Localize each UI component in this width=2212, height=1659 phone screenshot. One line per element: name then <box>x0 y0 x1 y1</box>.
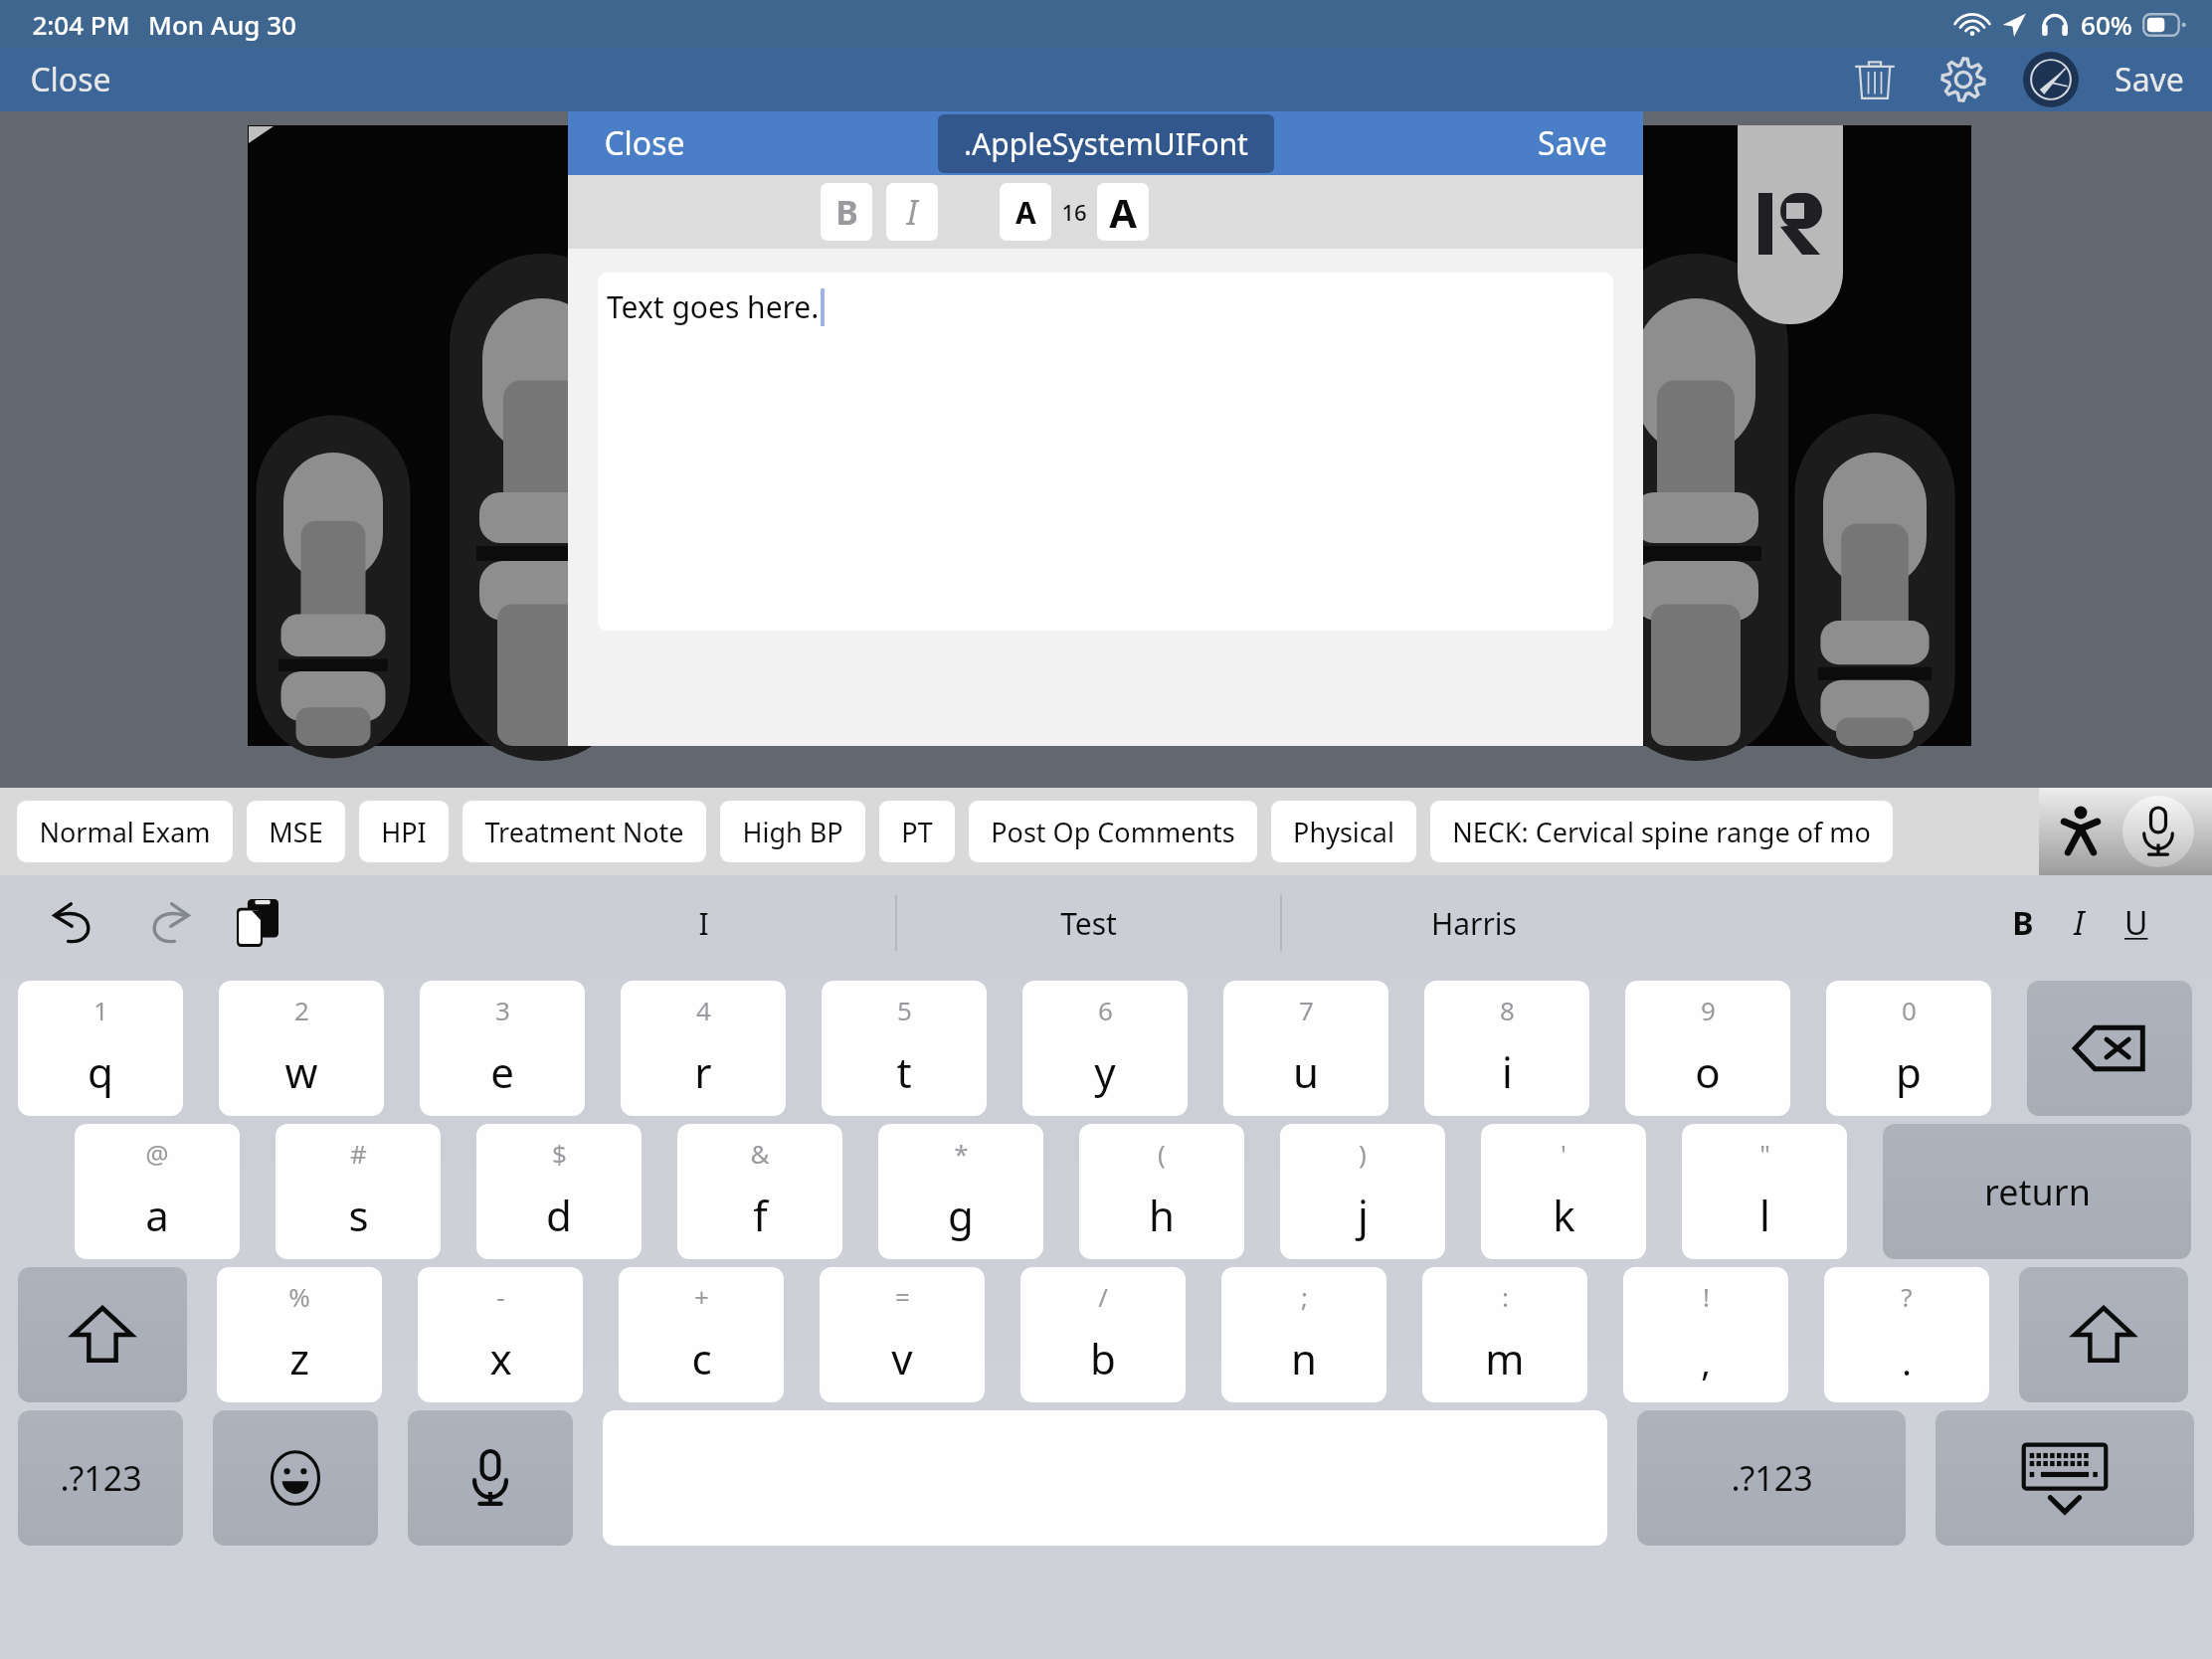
button[interactable]: Delete <box>1844 48 1906 111</box>
button[interactable]: 4 <box>621 981 786 1116</box>
button[interactable]: + <box>619 1267 784 1402</box>
button[interactable]: Shift <box>18 1267 187 1402</box>
staticText: 5 <box>897 993 912 1027</box>
button[interactable]: ) <box>1280 1124 1445 1259</box>
staticText: s <box>348 1187 369 1243</box>
button[interactable]: Harris <box>1282 875 1665 971</box>
button[interactable]: & <box>677 1124 842 1259</box>
button[interactable]: ' <box>1481 1124 1646 1259</box>
button[interactable]: Settings <box>1930 48 1997 111</box>
button[interactable]: B <box>821 183 872 241</box>
button[interactable]: Save <box>2105 52 2194 107</box>
staticText: ) <box>1359 1136 1367 1171</box>
button[interactable]: Test <box>897 875 1280 971</box>
staticText: & <box>750 1136 770 1171</box>
staticText: $ <box>552 1136 567 1171</box>
button[interactable]: ? <box>1824 1267 1989 1402</box>
button[interactable]: Close <box>594 116 695 170</box>
button[interactable]: " <box>1682 1124 1847 1259</box>
staticText: e <box>490 1043 514 1100</box>
button[interactable]: 5 <box>822 981 987 1116</box>
staticText: : <box>1502 1279 1509 1314</box>
staticText: r <box>694 1043 712 1100</box>
button[interactable]: Normal Exam <box>17 801 233 862</box>
staticText: I <box>906 189 918 235</box>
staticText: j <box>1358 1187 1369 1243</box>
button[interactable]: * <box>878 1124 1043 1259</box>
staticText: Physical <box>1293 814 1394 850</box>
button[interactable]: PT <box>879 801 955 862</box>
button[interactable]: : <box>1422 1267 1587 1402</box>
staticText: I <box>2074 901 2085 945</box>
button[interactable]: Shift right <box>2019 1267 2188 1402</box>
staticText: ! <box>1703 1279 1710 1314</box>
button[interactable]: - <box>418 1267 583 1402</box>
button[interactable]: / <box>1020 1267 1186 1402</box>
staticText: A <box>1015 192 1036 233</box>
button[interactable]: return <box>1883 1124 2191 1259</box>
button[interactable]: Treatment Note <box>462 801 706 862</box>
staticText: y <box>1094 1043 1116 1100</box>
button[interactable]: Emoji <box>213 1410 378 1546</box>
button[interactable]: # <box>276 1124 441 1259</box>
button[interactable]: Physical <box>1271 801 1416 862</box>
staticText: = <box>895 1279 910 1314</box>
button[interactable]: 2 <box>219 981 384 1116</box>
button[interactable]: Accessibility <box>2039 791 2122 872</box>
button[interactable]: 9 <box>1625 981 1790 1116</box>
button[interactable]: B <box>1992 891 2054 955</box>
button[interactable]: $ <box>476 1124 642 1259</box>
button[interactable]: A <box>1000 183 1051 241</box>
button[interactable]: Hide keyboard <box>1935 1410 2194 1546</box>
staticText: m <box>1485 1330 1525 1386</box>
button[interactable]: I <box>2054 891 2105 955</box>
button[interactable]: 3 <box>420 981 585 1116</box>
button[interactable]: 8 <box>1424 981 1589 1116</box>
button[interactable]: Save <box>1528 116 1617 170</box>
button[interactable]: Post Op Comments <box>969 801 1257 862</box>
button[interactable]: Dictate <box>408 1410 573 1546</box>
button[interactable]: 6 <box>1022 981 1188 1116</box>
button[interactable]: MSE <box>247 801 345 862</box>
button[interactable]: Close <box>16 52 125 107</box>
staticText: return <box>1984 1168 2091 1216</box>
button[interactable]: HPI <box>359 801 449 862</box>
staticText: b <box>1090 1330 1116 1386</box>
staticText: 8 <box>1500 993 1515 1027</box>
staticText: / <box>1098 1279 1108 1314</box>
button[interactable]: Draw <box>2019 48 2089 111</box>
staticText: i <box>1502 1043 1513 1100</box>
staticText: n <box>1291 1330 1317 1386</box>
button[interactable]: .AppleSystemUIFont <box>938 114 1274 173</box>
button[interactable]: I <box>511 875 895 971</box>
button[interactable]: Space <box>603 1410 1607 1546</box>
button[interactable]: 0 <box>1826 981 1991 1116</box>
staticText: u <box>1293 1043 1319 1100</box>
button[interactable]: % <box>217 1267 382 1402</box>
button[interactable]: 1 <box>18 981 183 1116</box>
staticText: Harris <box>1431 903 1517 944</box>
staticText: 0 <box>1902 993 1917 1027</box>
button[interactable]: Text goes here. <box>598 273 1613 631</box>
staticText: PT <box>901 814 933 850</box>
button[interactable]: Undo <box>40 891 109 955</box>
button[interactable]: A <box>1097 183 1149 241</box>
button[interactable]: ! <box>1623 1267 1788 1402</box>
button[interactable]: I <box>886 183 938 241</box>
button[interactable]: @ <box>75 1124 240 1259</box>
button[interactable]: Redo <box>133 891 203 955</box>
button[interactable]: .?123 <box>18 1410 183 1546</box>
button[interactable]: ; <box>1221 1267 1386 1402</box>
button[interactable]: Backspace <box>2027 981 2192 1116</box>
button[interactable]: NECK: Cervical spine range of mo <box>1430 801 1893 862</box>
staticText: B <box>835 189 858 235</box>
button[interactable]: = <box>820 1267 985 1402</box>
button[interactable]: High BP <box>720 801 865 862</box>
button[interactable]: U <box>2105 891 2168 955</box>
button[interactable]: ( <box>1079 1124 1244 1259</box>
button[interactable]: Dictation <box>2122 796 2194 867</box>
button[interactable]: 7 <box>1223 981 1388 1116</box>
button[interactable]: Paste <box>227 889 288 957</box>
button[interactable]: .?123 <box>1637 1410 1906 1546</box>
staticText: . <box>1902 1338 1912 1386</box>
